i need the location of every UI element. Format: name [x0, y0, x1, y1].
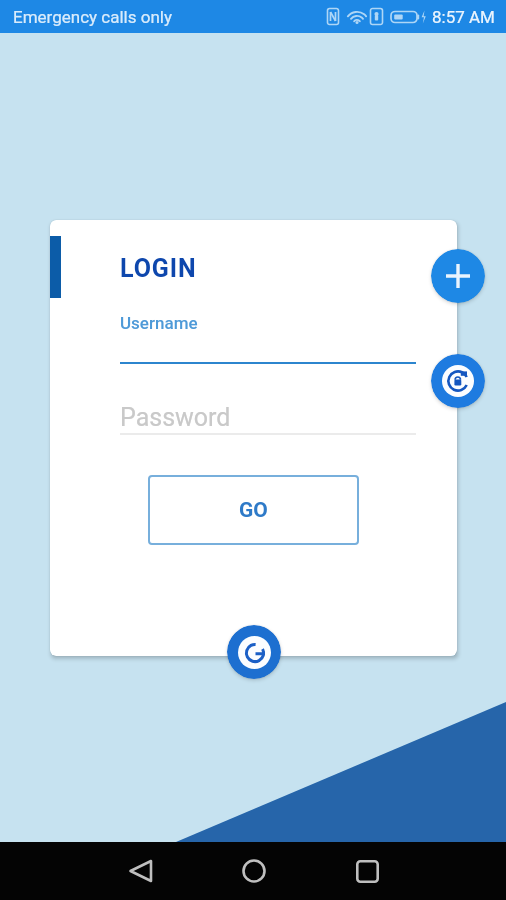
staticText: Username — [120, 313, 198, 333]
staticText: 8:57 AM — [432, 7, 495, 27]
staticText: Password — [120, 403, 231, 432]
button[interactable]: Add account — [431, 249, 485, 303]
staticText: GO — [239, 498, 268, 523]
button[interactable]: Home — [226, 842, 282, 900]
button[interactable]: Reset password — [431, 354, 485, 408]
staticText: Emergency calls only — [13, 7, 172, 27]
staticText: LOGIN — [120, 254, 197, 283]
button[interactable]: Sign in with Google — [227, 625, 281, 679]
button[interactable]: GO — [148, 475, 359, 545]
button[interactable]: Back — [113, 842, 169, 900]
button[interactable]: Recent apps — [339, 842, 395, 900]
